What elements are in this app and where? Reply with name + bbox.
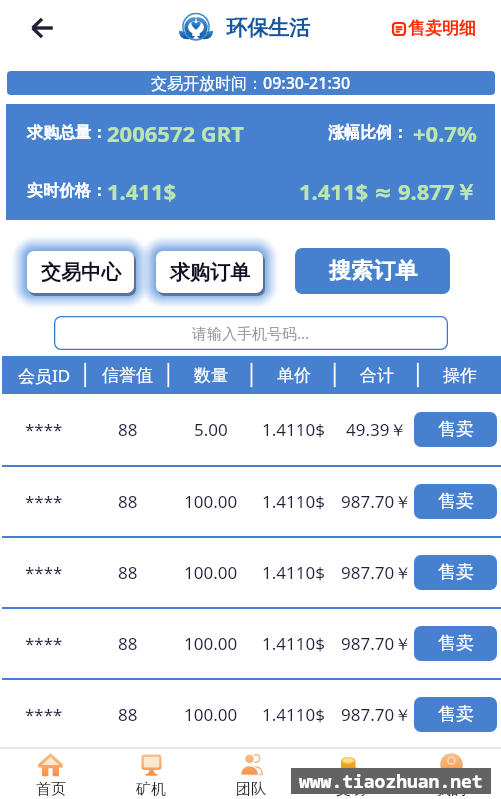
staticText: 88 (118, 703, 138, 726)
staticText: 操作 (443, 365, 477, 386)
staticText: 售卖 (438, 561, 474, 584)
staticText: 团队 (236, 780, 266, 799)
button[interactable]: 交易中心 (27, 251, 134, 293)
staticText: **** (25, 632, 63, 655)
staticText: 交易开放时间：09:30-21:30 (151, 72, 351, 94)
staticText: 交易中心 (41, 260, 121, 285)
button[interactable]: 搜索订单 (295, 248, 450, 294)
staticText: 1.4110$ (262, 490, 325, 513)
staticText: **** (25, 561, 63, 584)
staticText: **** (25, 418, 63, 441)
staticText: 2006572 GRT (107, 118, 244, 148)
staticText: 售卖 (438, 490, 474, 513)
staticText: 88 (118, 418, 138, 441)
button[interactable]: 售卖 (414, 412, 497, 447)
staticText: 987.70￥ (341, 632, 412, 655)
button[interactable]: 交易 (301, 749, 401, 799)
staticText: 88 (118, 632, 138, 655)
staticText: 1.4110$ (262, 632, 325, 655)
staticText: 售卖明细 (408, 18, 476, 39)
staticText: 实时价格： (27, 181, 107, 201)
staticText: 交易 (336, 780, 366, 799)
button[interactable]: 售卖 (414, 484, 497, 519)
button[interactable]: 请输入手机号码... (54, 316, 448, 350)
staticText: 100.00 (184, 490, 238, 513)
staticText: 49.39￥ (346, 418, 407, 441)
staticText: 1.4110$ (262, 418, 325, 441)
button[interactable]: 售卖明细 (392, 18, 476, 39)
button[interactable]: 我的 (401, 749, 501, 799)
staticText: 1.411$ ≈ 9.877￥ (299, 176, 477, 206)
staticText: 单价 (277, 365, 311, 386)
button[interactable]: Back (20, 6, 64, 50)
staticText: 1.411$ (107, 176, 177, 206)
button[interactable]: 首页 (0, 749, 101, 799)
staticText: 涨幅比例： (328, 123, 408, 143)
staticText: **** (25, 703, 63, 726)
staticText: 1.4110$ (262, 561, 325, 584)
staticText: 100.00 (184, 703, 238, 726)
staticText: 987.70￥ (341, 561, 412, 584)
staticText: 88 (118, 490, 138, 513)
staticText: **** (25, 490, 63, 513)
staticText: 售卖 (438, 632, 474, 655)
staticText: 求购总量： (27, 123, 107, 143)
button[interactable]: 售卖 (414, 555, 497, 590)
staticText: 环保生活 (226, 15, 310, 41)
staticText: 会员ID (18, 364, 71, 387)
staticText: 合计 (360, 365, 394, 386)
staticText: 987.70￥ (341, 490, 412, 513)
staticText: 1.4110$ (262, 703, 325, 726)
staticText: +0.7% (413, 118, 477, 148)
staticText: 售卖 (438, 703, 474, 726)
staticText: 100.00 (184, 632, 238, 655)
staticText: www.tiaozhuan.net (299, 769, 483, 794)
staticText: 88 (118, 561, 138, 584)
button[interactable]: 团队 (201, 749, 301, 799)
button[interactable]: 矿机 (101, 749, 201, 799)
staticText: 5.00 (194, 418, 228, 441)
staticText: 数量 (194, 365, 228, 386)
staticText: 求购订单 (170, 260, 250, 285)
staticText: 100.00 (184, 561, 238, 584)
button[interactable]: 售卖 (414, 697, 497, 732)
staticText: 首页 (36, 780, 66, 799)
staticText: 我的 (436, 780, 466, 799)
staticText: 请输入手机号码... (192, 323, 310, 343)
staticText: 售卖 (438, 418, 474, 441)
staticText: 信誉值 (102, 365, 153, 386)
staticText: 搜索订单 (329, 257, 417, 285)
button[interactable]: 售卖 (414, 626, 497, 661)
button[interactable]: 求购订单 (156, 251, 263, 293)
staticText: 矿机 (136, 780, 166, 799)
staticText: 987.70￥ (341, 703, 412, 726)
